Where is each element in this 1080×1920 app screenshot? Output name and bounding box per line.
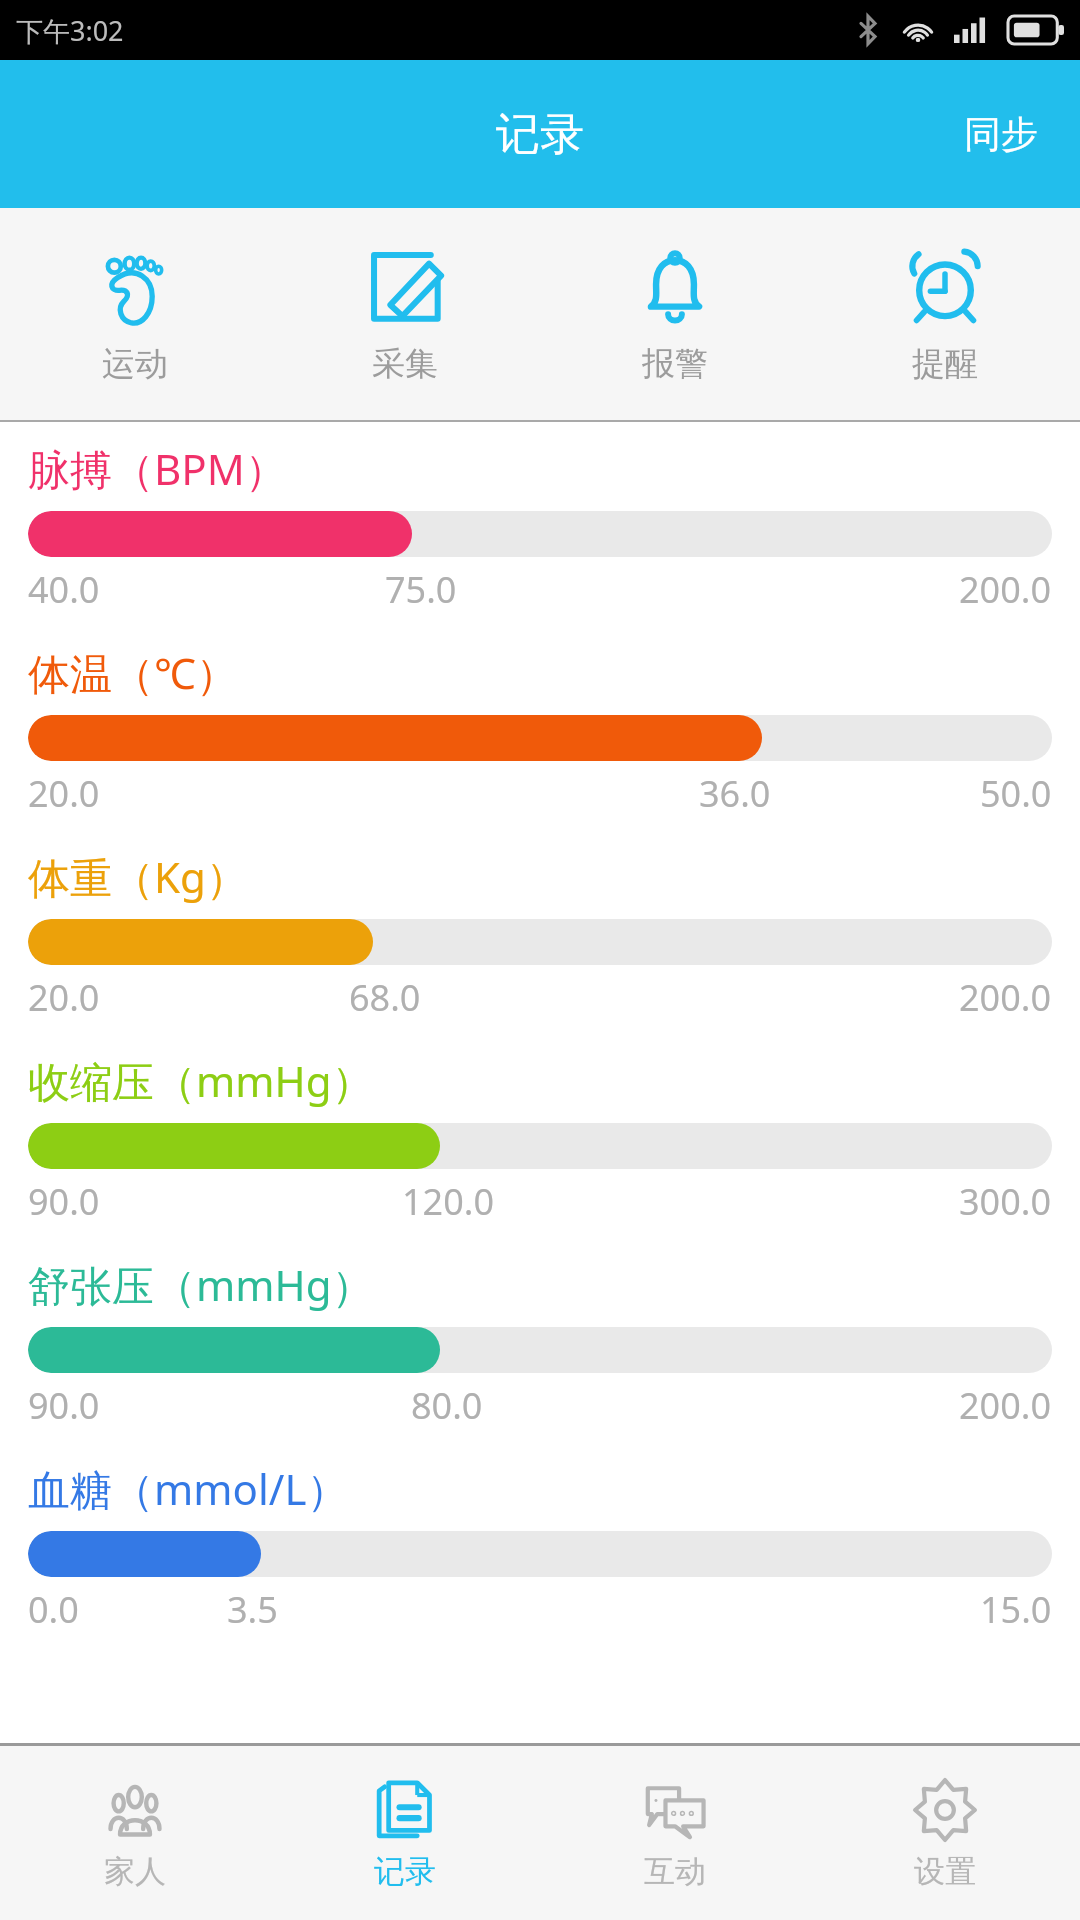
button[interactable]: Reminder (810, 208, 1080, 420)
staticText: 记录 (496, 107, 584, 162)
staticText: 120.0 (402, 1177, 495, 1226)
staticText: 80.0 (411, 1381, 483, 1430)
staticText: 下午3:02 (16, 12, 124, 49)
button[interactable]: Collect (270, 208, 540, 420)
button[interactable]: 舒张压（mmHg） (0, 1256, 1080, 1460)
staticText: 体温（℃） (28, 644, 238, 701)
staticText: 40.0 (28, 565, 100, 614)
staticText: 20.0 (28, 973, 100, 1022)
button[interactable]: Exercise (0, 208, 270, 420)
staticText: 3.5 (227, 1585, 278, 1634)
staticText: 15.0 (980, 1585, 1052, 1634)
staticText: 收缩压（mmHg） (28, 1052, 374, 1109)
button[interactable]: 记录 (270, 1746, 540, 1920)
staticText: 200.0 (959, 565, 1052, 614)
staticText: 舒张压（mmHg） (28, 1256, 374, 1313)
staticText: 家人 (104, 1852, 166, 1891)
button[interactable]: Alarm (540, 208, 810, 420)
staticText: 68.0 (349, 973, 421, 1022)
staticText: 20.0 (28, 769, 100, 818)
staticText: 50.0 (980, 769, 1052, 818)
staticText: 脉搏（BPM） (28, 440, 287, 497)
staticText: 提醒 (912, 343, 978, 385)
button[interactable]: 同步 (922, 60, 1080, 208)
staticText: 200.0 (959, 973, 1052, 1022)
button[interactable]: 家人 (0, 1746, 270, 1920)
button[interactable]: 血糖（mmol/L） (0, 1460, 1080, 1664)
staticText: 血糖（mmol/L） (28, 1460, 349, 1517)
button[interactable]: 体重（Kg） (0, 848, 1080, 1052)
staticText: 同步 (964, 111, 1038, 158)
staticText: 设置 (914, 1852, 976, 1891)
staticText: 90.0 (28, 1177, 100, 1226)
button[interactable]: 脉搏（BPM） (0, 440, 1080, 644)
staticText: 0.0 (28, 1585, 79, 1634)
staticText: 200.0 (959, 1381, 1052, 1430)
staticText: 90.0 (28, 1381, 100, 1430)
staticText: 采集 (372, 343, 438, 385)
staticText: 体重（Kg） (28, 848, 248, 905)
staticText: 报警 (642, 343, 708, 385)
staticText: 记录 (374, 1852, 436, 1891)
button[interactable]: 收缩压（mmHg） (0, 1052, 1080, 1256)
staticText: 互动 (644, 1852, 706, 1891)
staticText: 75.0 (385, 565, 457, 614)
staticText: 运动 (102, 343, 168, 385)
button[interactable]: 体温（℃） (0, 644, 1080, 848)
staticText: 36.0 (699, 769, 771, 818)
button[interactable]: 设置 (810, 1746, 1080, 1920)
button[interactable]: 互动 (540, 1746, 810, 1920)
staticText: 300.0 (959, 1177, 1052, 1226)
